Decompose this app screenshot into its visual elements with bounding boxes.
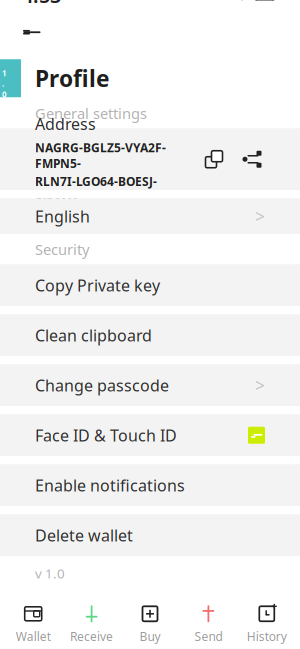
button[interactable]: Change passcode	[0, 364, 300, 406]
staticText: >	[255, 374, 265, 397]
staticText: Copy Private key	[35, 275, 160, 296]
button[interactable]: Copy Private key	[0, 264, 300, 306]
staticText: History	[247, 628, 287, 644]
staticText: Face ID & Touch ID	[35, 425, 177, 446]
staticText: Clean clipboard	[35, 325, 152, 346]
button[interactable]: Buy	[121, 601, 179, 647]
button[interactable]: Wallet	[4, 601, 62, 647]
staticText: Profile	[35, 63, 110, 93]
staticText: Send	[194, 628, 222, 644]
staticText: Receive	[70, 628, 113, 644]
button[interactable]: Enable notifications	[0, 464, 300, 506]
staticText: 4:53	[22, 0, 61, 9]
staticText: English	[35, 206, 90, 227]
staticText: >	[255, 205, 265, 228]
staticText: v 1.0	[35, 564, 65, 582]
staticText: 1.0	[2, 68, 7, 100]
button[interactable]: Copy address	[201, 144, 227, 174]
staticText: Enable notifications	[35, 475, 185, 496]
button[interactable]: English	[0, 198, 300, 234]
staticText: General settings	[35, 103, 147, 123]
button[interactable]: Receive	[62, 601, 121, 647]
staticText: NAGRG-BGLZ5-VYA2F-FMPN5-	[35, 139, 166, 171]
staticText: Security	[35, 239, 89, 259]
button[interactable]: Share address	[239, 144, 265, 174]
staticText: RLN7I-LGO64-BOESJ-XNSYD	[35, 173, 157, 205]
button[interactable]: Send	[179, 601, 238, 647]
staticText: Delete wallet	[35, 525, 133, 546]
staticText: Address	[35, 113, 96, 134]
button[interactable]: Delete wallet	[0, 514, 300, 556]
staticText: Buy	[139, 628, 160, 644]
button[interactable]: Face ID & Touch ID	[0, 414, 300, 456]
staticText: Change passcode	[35, 375, 169, 396]
button[interactable]: Back	[8, 16, 56, 48]
staticText: Wallet	[16, 628, 51, 644]
button[interactable]: Clean clipboard	[0, 314, 300, 356]
button[interactable]: History	[238, 601, 296, 647]
